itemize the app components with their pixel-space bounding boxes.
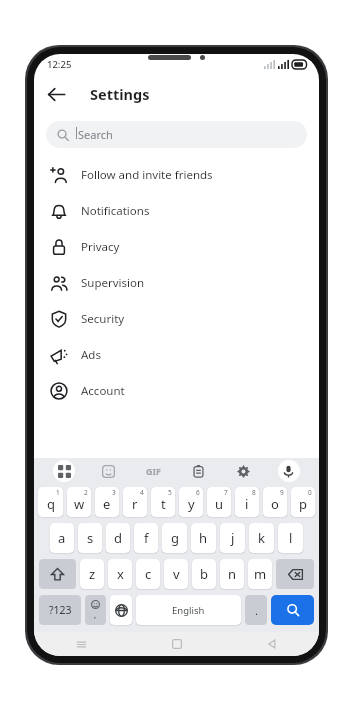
staticText: n (228, 565, 237, 583)
staticText: Ads (81, 347, 101, 363)
button[interactable]: Home (129, 632, 224, 656)
button[interactable]: d (106, 523, 130, 553)
staticText: 3 (112, 488, 116, 497)
button[interactable]: Back (40, 78, 72, 110)
button[interactable]: English (136, 595, 241, 625)
button[interactable]: u (207, 487, 231, 517)
button[interactable]: i (235, 487, 259, 517)
staticText: f (144, 529, 149, 547)
staticText: y (188, 495, 195, 513)
staticText: 4 (140, 488, 144, 497)
staticText: o (271, 495, 279, 513)
button[interactable]: Clipboard (176, 458, 221, 484)
staticText: GIF (146, 465, 161, 477)
button[interactable]: . (245, 595, 267, 625)
button[interactable]: Stickers (86, 458, 131, 484)
button[interactable]: ?123 (39, 595, 81, 625)
button[interactable]: o (263, 487, 287, 517)
button[interactable]: t (151, 487, 175, 517)
button[interactable]: c (136, 559, 160, 589)
staticText: 9 (280, 488, 284, 497)
button[interactable]: Backspace (276, 559, 314, 589)
button[interactable]: Privacy (34, 229, 319, 265)
staticText: l (289, 529, 293, 547)
button[interactable]: Ads (34, 337, 319, 373)
button[interactable]: Settings (221, 458, 266, 484)
button[interactable]: p (291, 487, 315, 517)
staticText: 2 (84, 488, 88, 497)
staticText: Notifications (81, 203, 150, 219)
staticText: g (171, 529, 179, 547)
button[interactable]: Voice input (266, 458, 311, 484)
button[interactable]: f (134, 523, 158, 553)
staticText: Privacy (81, 239, 120, 255)
staticText: b (200, 565, 208, 583)
staticText: k (258, 529, 265, 547)
staticText: 1 (56, 488, 60, 497)
staticText: 0 (308, 488, 312, 497)
staticText: 6 (196, 488, 200, 497)
staticText: s (87, 529, 94, 547)
staticText: ?123 (49, 603, 72, 617)
button[interactable]: s (78, 523, 102, 553)
staticText: q (47, 495, 55, 513)
staticText: t (161, 495, 166, 513)
staticText: 12:25 (47, 58, 72, 71)
button[interactable]: Back (224, 632, 319, 656)
button[interactable]: h (191, 523, 216, 553)
staticText: e (103, 495, 111, 513)
button[interactable]: Search (46, 121, 307, 148)
staticText: . (255, 603, 258, 618)
button[interactable]: y (179, 487, 203, 517)
button[interactable]: k (249, 523, 274, 553)
button[interactable]: Account (34, 373, 319, 409)
button[interactable]: v (164, 559, 188, 589)
staticText: Search (78, 127, 113, 142)
button[interactable]: Notifications (34, 193, 319, 229)
button[interactable]: Shift (39, 559, 76, 589)
button[interactable]: w (67, 487, 91, 517)
button[interactable]: Search (271, 595, 314, 625)
button[interactable]: Change language (110, 595, 132, 625)
staticText: r (132, 495, 138, 513)
staticText: Security (81, 311, 125, 327)
button[interactable]: e (95, 487, 119, 517)
button[interactable]: z (80, 559, 104, 589)
button[interactable]: Emoji (85, 595, 106, 625)
button[interactable]: b (192, 559, 216, 589)
staticText: i (245, 495, 249, 513)
staticText: 7 (224, 488, 228, 497)
button[interactable]: Follow and invite friends (34, 157, 319, 193)
button[interactable]: q (38, 487, 63, 517)
button[interactable]: n (220, 559, 244, 589)
staticText: w (74, 495, 85, 513)
staticText: 8 (252, 488, 256, 497)
button[interactable]: l (278, 523, 303, 553)
button[interactable]: m (248, 559, 272, 589)
staticText: v (173, 565, 180, 583)
staticText: j (231, 529, 235, 547)
staticText: , (94, 609, 97, 620)
button[interactable]: g (162, 523, 187, 553)
staticText: Settings (90, 84, 150, 104)
staticText: Follow and invite friends (81, 167, 213, 183)
staticText: m (254, 565, 267, 583)
staticText: p (299, 495, 307, 513)
button[interactable]: Apps (42, 458, 86, 484)
button[interactable]: GIF (131, 458, 176, 484)
staticText: 5 (168, 488, 172, 497)
staticText: h (199, 529, 208, 547)
staticText: Supervision (81, 275, 145, 291)
button[interactable]: j (220, 523, 245, 553)
button[interactable]: x (108, 559, 132, 589)
button[interactable]: a (50, 523, 74, 553)
button[interactable]: Security (34, 301, 319, 337)
staticText: u (215, 495, 224, 513)
button[interactable]: Recents (34, 632, 129, 656)
staticText: a (58, 529, 66, 547)
staticText: English (172, 604, 205, 617)
staticText: z (89, 565, 96, 583)
button[interactable]: Supervision (34, 265, 319, 301)
button[interactable]: r (123, 487, 147, 517)
staticText: x (117, 565, 124, 583)
